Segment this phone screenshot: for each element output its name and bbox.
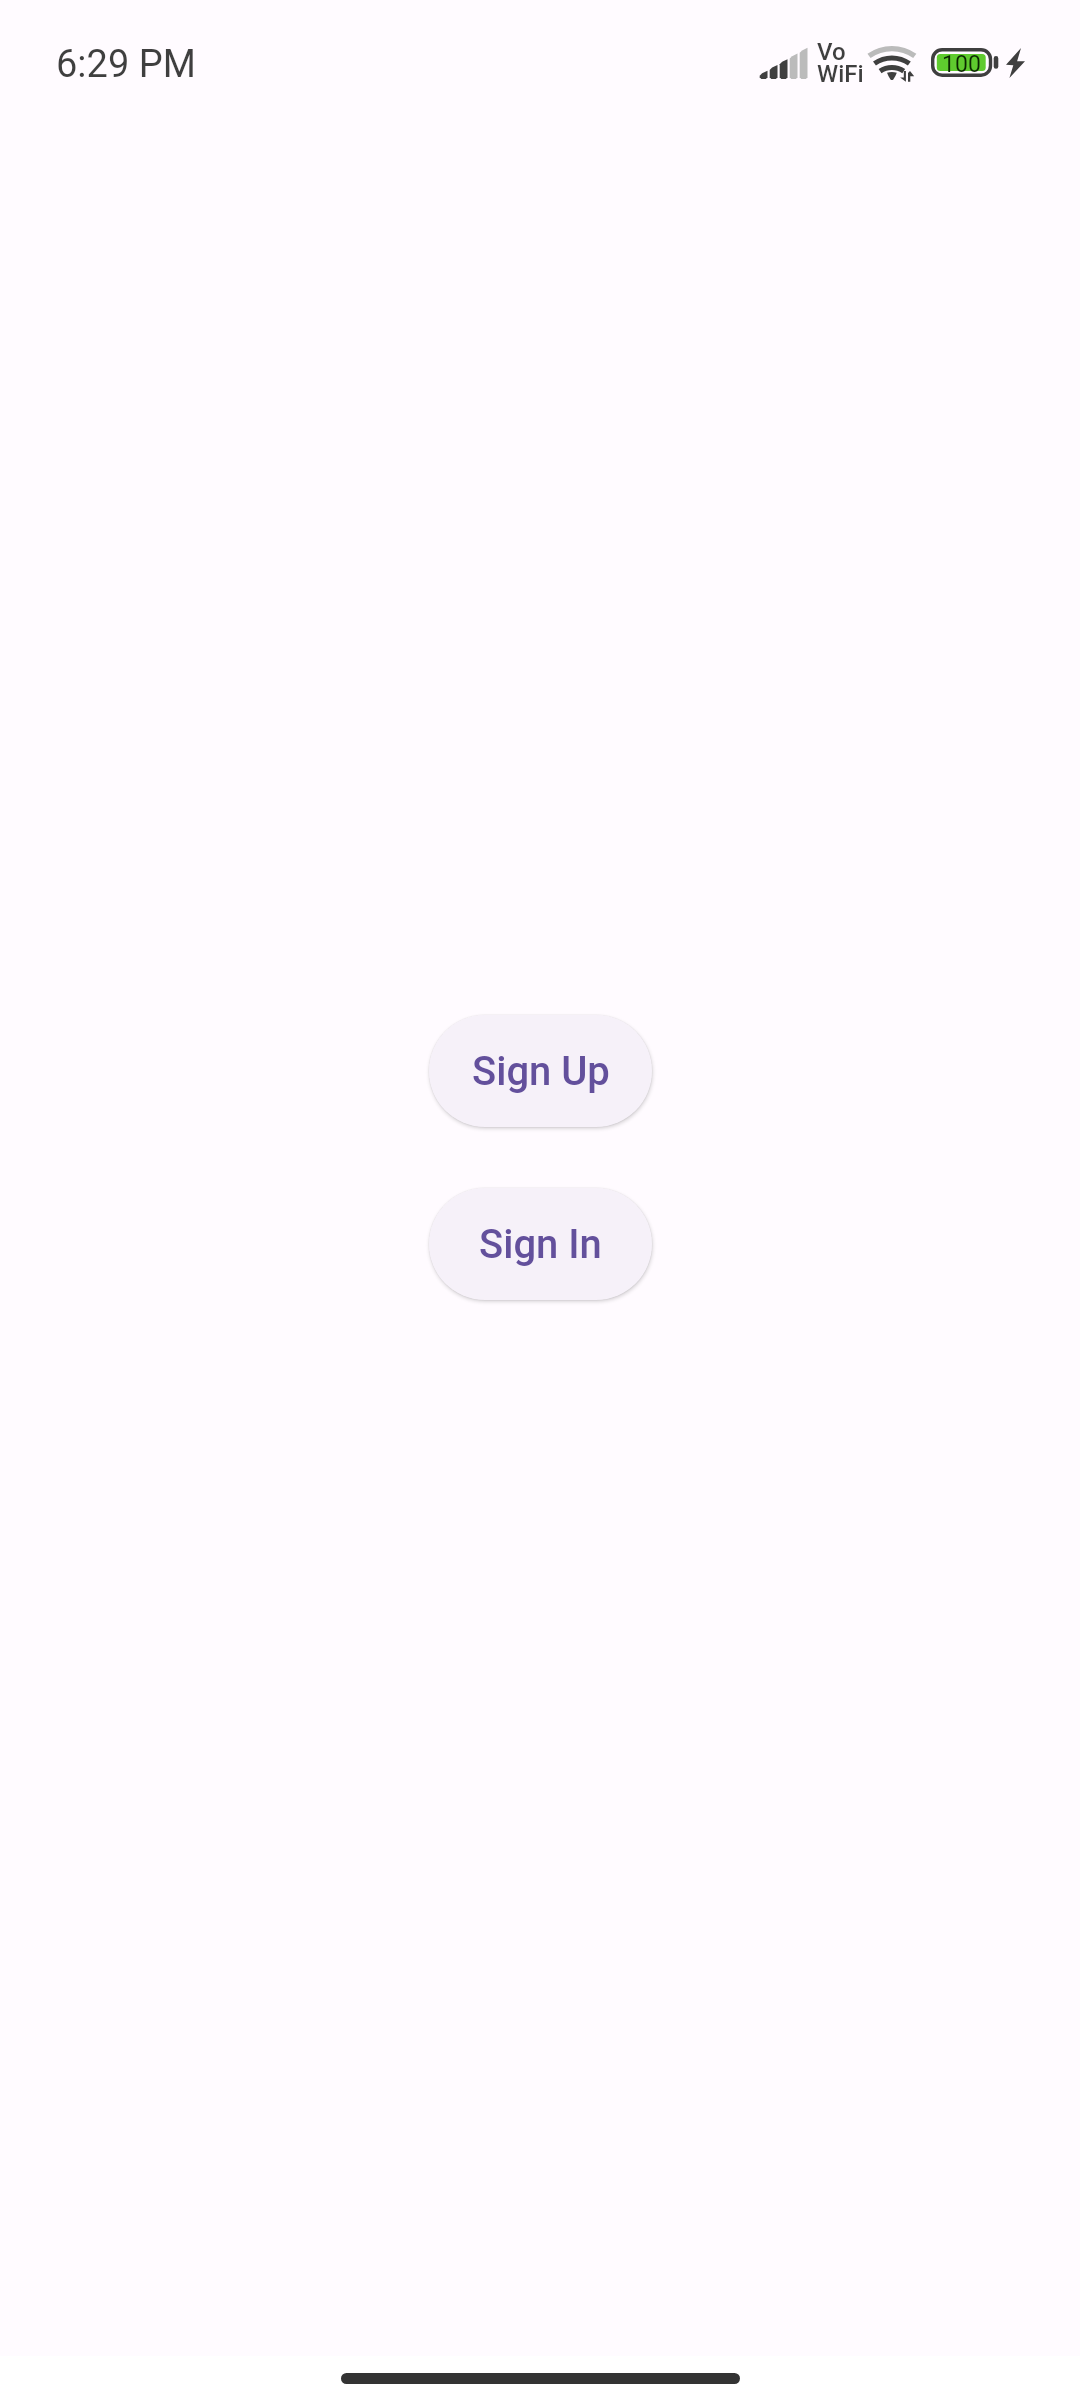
button[interactable]: Home bbox=[341, 2373, 740, 2384]
staticText: WiFi bbox=[817, 60, 864, 88]
button[interactable]: Sign Up bbox=[429, 1015, 652, 1127]
staticText: Sign Up bbox=[472, 1048, 610, 1095]
staticText: Sign In bbox=[479, 1221, 602, 1268]
staticText: Vo bbox=[817, 38, 846, 66]
button[interactable]: Sign In bbox=[429, 1188, 652, 1300]
staticText: 6:29 PM bbox=[56, 42, 196, 87]
staticText: 100 bbox=[937, 51, 986, 78]
